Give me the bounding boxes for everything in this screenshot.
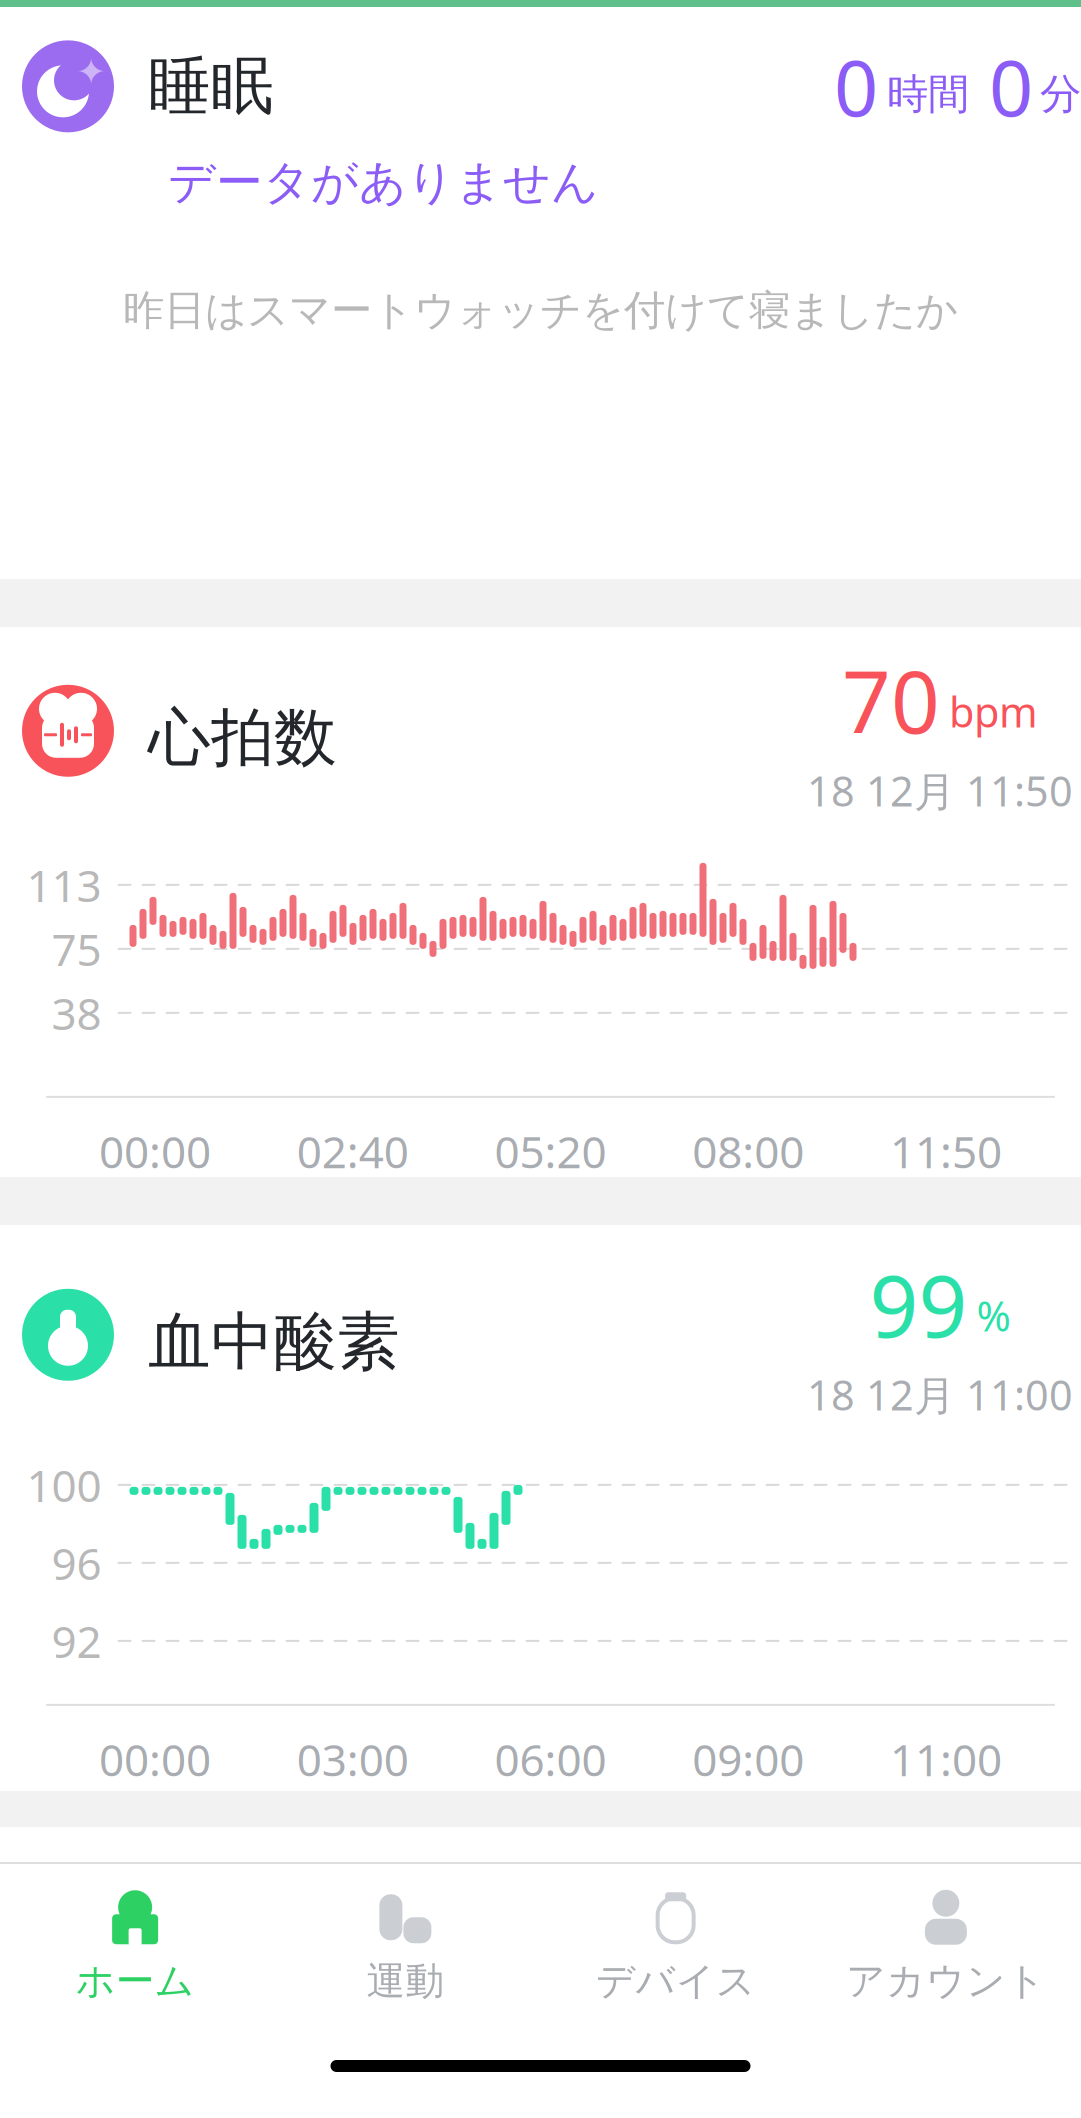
staticText: 09:00 [692, 1730, 804, 1788]
staticText: ✦ [76, 51, 106, 92]
staticText: 睡眠 [148, 48, 274, 125]
staticText: bpm [949, 684, 1038, 739]
staticText: 血中酸素 [148, 1303, 400, 1380]
staticText: データがありません [168, 154, 599, 211]
staticText: 0 [834, 35, 878, 138]
staticText: 02:40 [297, 1122, 409, 1180]
staticText: デバイス [596, 1957, 756, 2005]
staticText: 時間 [887, 69, 969, 120]
staticText: 心拍数 [148, 699, 337, 776]
staticText: 96 [51, 1534, 101, 1592]
staticText: 38 [51, 984, 101, 1042]
button[interactable]: ✦ [0, 7, 1081, 579]
staticText: 00:00 [99, 1730, 211, 1788]
staticText: 昨日はスマートウォッチを付けて寝ましたか [123, 285, 958, 336]
button[interactable]: 血中酸素 [0, 1225, 1081, 1791]
button[interactable]: ホーム [0, 1873, 270, 2005]
staticText: 18 12月 11:00 [807, 1367, 1073, 1422]
staticText: 運動 [366, 1957, 444, 2005]
staticText: ホーム [76, 1957, 195, 2005]
staticText: 11:50 [890, 1122, 1002, 1180]
staticText: 99 [869, 1248, 967, 1361]
button[interactable]: デバイス [540, 1873, 811, 2005]
staticText: 03:00 [297, 1730, 409, 1788]
staticText: 08:00 [692, 1122, 804, 1180]
staticText: 分 [1040, 69, 1081, 120]
staticText: 11:00 [890, 1730, 1002, 1788]
staticText: 75 [51, 920, 101, 978]
staticText: 100 [26, 1456, 101, 1514]
staticText: アカウント [846, 1957, 1046, 2005]
staticText: 113 [26, 856, 101, 914]
staticText: % [976, 1288, 1010, 1343]
staticText: 70 [842, 644, 940, 757]
staticText: 18 12月 11:50 [807, 763, 1073, 818]
staticText: 92 [51, 1612, 101, 1670]
button[interactable]: アカウント [811, 1873, 1081, 2005]
staticText: 0 [989, 35, 1033, 138]
staticText: 06:00 [494, 1730, 606, 1788]
staticText: 00:00 [99, 1122, 211, 1180]
staticText: 05:20 [494, 1122, 606, 1180]
button[interactable]: 心拍数 [0, 627, 1081, 1177]
button[interactable]: 運動 [270, 1873, 540, 2005]
